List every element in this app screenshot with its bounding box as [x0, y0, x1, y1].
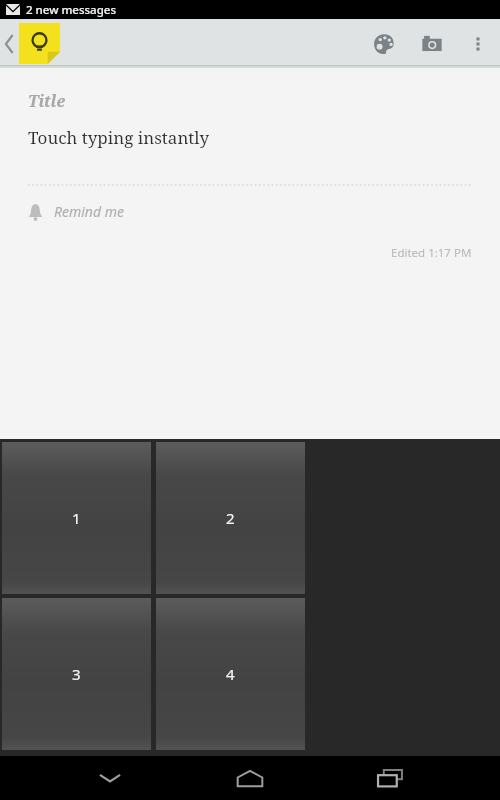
staticText: Remind me: [54, 202, 124, 221]
button[interactable]: Home: [220, 756, 280, 800]
staticText: 2 new messages: [26, 2, 116, 18]
staticText: Title: [28, 90, 66, 112]
button[interactable]: Remind me: [28, 200, 124, 223]
button[interactable]: 2: [156, 442, 305, 594]
button[interactable]: Title: [28, 90, 472, 112]
button[interactable]: Hide keyboard: [80, 756, 140, 800]
staticText: 2: [226, 508, 235, 528]
button[interactable]: 4: [156, 598, 305, 750]
button[interactable]: Change color: [360, 20, 408, 68]
button[interactable]: Touch typing instantly: [28, 126, 472, 149]
button[interactable]: Camera: [408, 20, 456, 68]
button[interactable]: Recent apps: [360, 756, 420, 800]
staticText: 1: [72, 508, 81, 528]
button[interactable]: Navigate up, Keep: [0, 19, 66, 68]
button[interactable]: 3: [2, 598, 151, 750]
staticText: 3: [72, 664, 81, 684]
button[interactable]: 1: [2, 442, 151, 594]
staticText: Edited 1:17 PM: [391, 245, 472, 261]
staticText: Touch typing instantly: [28, 126, 210, 149]
staticText: 4: [226, 664, 235, 684]
button[interactable]: More options: [456, 22, 500, 66]
